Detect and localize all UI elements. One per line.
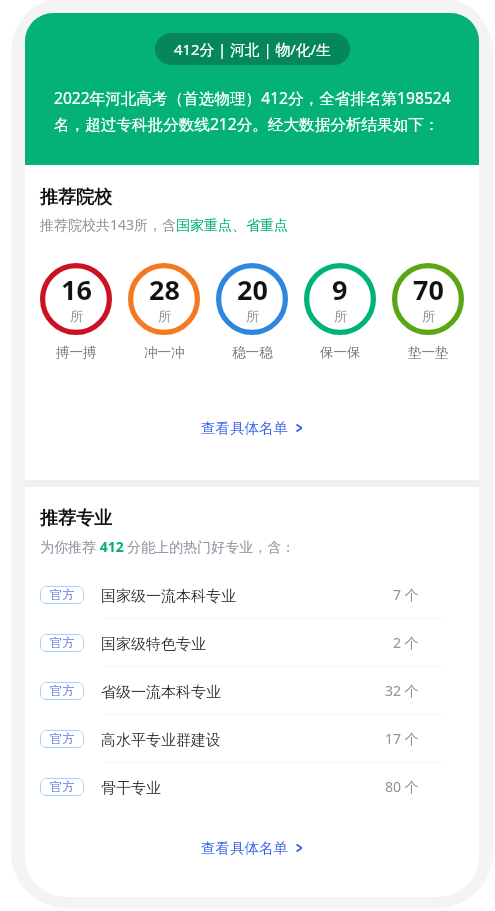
staticText: 为你推荐 412 分能上的热门好专业，含： [40, 537, 296, 556]
button[interactable]: 20 [216, 263, 288, 361]
staticText: 官方 [50, 587, 75, 603]
staticText: 查看具体名单 [201, 839, 288, 857]
staticText: 国家级一流本科专业 [101, 587, 236, 606]
staticText: 所 [158, 308, 171, 324]
button[interactable]: 官方 [40, 619, 464, 667]
staticText: 查看具体名单 [201, 419, 288, 437]
staticText: 高水平专业群建设 [101, 731, 221, 750]
staticText: 官方 [50, 635, 75, 651]
staticText: 17 个 [385, 729, 419, 748]
staticText: 稳一稳 [232, 344, 273, 361]
button[interactable]: 查看具体名单 [193, 835, 312, 861]
staticText: 冲一冲 [144, 344, 185, 361]
staticText: 80 个 [385, 777, 419, 796]
staticText: 推荐专业 [40, 507, 112, 530]
button[interactable]: 官方 [40, 571, 464, 619]
staticText: 412分 | 河北 | 物/化/生 [174, 39, 331, 59]
staticText: 推荐院校 [40, 186, 112, 209]
staticText: 2 个 [393, 633, 419, 652]
staticText: 32 个 [385, 681, 419, 700]
staticText: 70 [413, 271, 444, 308]
button[interactable]: 官方 [40, 667, 464, 715]
button[interactable]: 412分 | 河北 | 物/化/生 [155, 33, 350, 65]
button[interactable]: 官方 [40, 763, 464, 810]
staticText: 官方 [50, 731, 75, 747]
button[interactable]: 28 [128, 263, 200, 361]
button[interactable]: 9 [304, 263, 376, 361]
staticText: 推荐院校共143所，含国家重点、省重点 [40, 215, 289, 234]
staticText: 9 [332, 271, 348, 308]
staticText: 官方 [50, 683, 75, 699]
staticText: 省级一流本科专业 [101, 683, 221, 702]
staticText: 搏一搏 [56, 344, 97, 361]
staticText: 所 [246, 308, 259, 324]
staticText: 所 [422, 308, 435, 324]
staticText: 28 [149, 271, 180, 308]
button[interactable]: 70 [392, 263, 464, 361]
staticText: 官方 [50, 779, 75, 795]
button[interactable]: 官方 [40, 715, 464, 763]
staticText: 所 [334, 308, 347, 324]
staticText: 7 个 [393, 585, 419, 604]
staticText: 2022年河北高考（首选物理）412分，全省排名第198524名，超过专科批分数… [54, 87, 457, 135]
staticText: 垫一垫 [408, 344, 449, 361]
button[interactable]: 查看具体名单 [193, 415, 312, 441]
staticText: 国家级特色专业 [101, 635, 206, 654]
staticText: 骨干专业 [101, 779, 161, 798]
button[interactable]: 16 [40, 263, 112, 361]
staticText: 保一保 [320, 344, 361, 361]
staticText: 16 [61, 271, 92, 308]
staticText: 20 [237, 271, 268, 308]
staticText: 所 [70, 308, 83, 324]
